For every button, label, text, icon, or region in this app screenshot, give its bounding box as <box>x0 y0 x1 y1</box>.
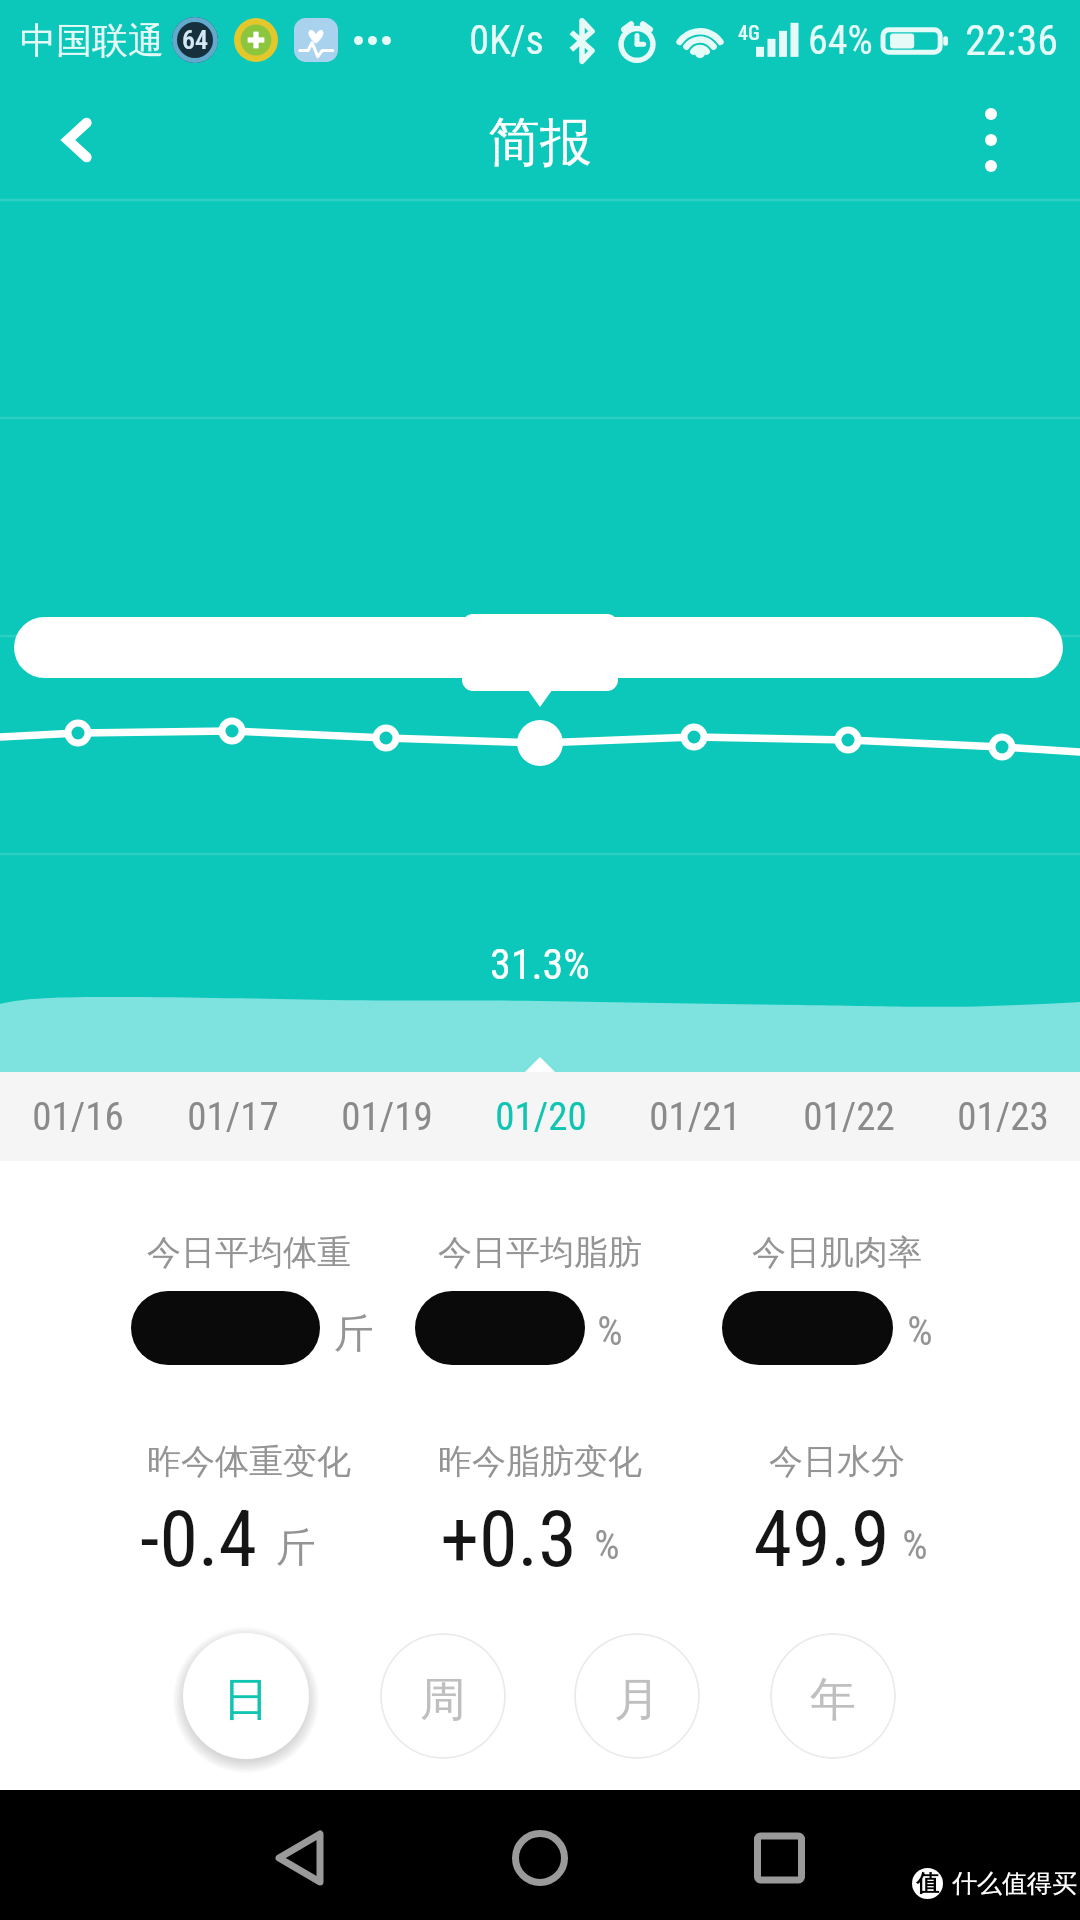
staticText: 斤 <box>334 1308 374 1358</box>
button[interactable]: 01/16 <box>0 1072 155 1161</box>
staticText: 周 <box>420 1671 466 1729</box>
staticText: 01/20 <box>495 1094 587 1140</box>
staticText: 昨今体重变化 <box>147 1440 351 1483</box>
button[interactable]: 年 <box>770 1633 896 1759</box>
staticText: 今日平均脂肪 <box>438 1231 642 1274</box>
staticText: 64 <box>182 25 208 55</box>
staticText: 今日肌肉率 <box>752 1231 922 1274</box>
staticText: % <box>597 1308 623 1355</box>
button[interactable]: More options <box>951 100 1031 180</box>
staticText: 01/19 <box>341 1094 433 1140</box>
button[interactable]: 日 <box>183 1633 309 1759</box>
button[interactable]: 01/21 <box>618 1072 772 1161</box>
button[interactable]: Back <box>38 100 118 180</box>
staticText: 斤 <box>276 1522 316 1572</box>
staticText: 64% <box>808 17 873 64</box>
staticText: +0.3 <box>440 1494 577 1585</box>
button[interactable]: 01/17 <box>155 1072 310 1161</box>
staticText: 01/23 <box>957 1094 1049 1140</box>
staticText: 日 <box>223 1671 269 1729</box>
staticText: 简报 <box>488 110 592 176</box>
staticText: 01/16 <box>32 1094 124 1140</box>
staticText: 年 <box>810 1671 856 1729</box>
button[interactable]: 01/19 <box>310 1072 464 1161</box>
staticText: 22:36 <box>965 16 1058 65</box>
staticText: 今日水分 <box>769 1440 905 1483</box>
button[interactable]: 01/20 <box>464 1072 618 1161</box>
staticText: 什么值得买 <box>952 1868 1077 1899</box>
staticText: 月 <box>614 1671 660 1729</box>
button[interactable]: 周 <box>380 1633 506 1759</box>
staticText: 今日平均体重 <box>147 1231 351 1274</box>
button[interactable]: 月 <box>574 1633 700 1759</box>
staticText: 01/22 <box>803 1094 895 1140</box>
button[interactable]: 01/22 <box>772 1072 926 1161</box>
staticText: 31.3% <box>490 940 590 989</box>
staticText: 中国联通 <box>20 18 164 63</box>
staticText: 4G <box>738 21 760 44</box>
staticText: % <box>594 1522 620 1569</box>
staticText: -0.4 <box>140 1494 257 1585</box>
staticText: 49.9 <box>753 1494 890 1585</box>
staticText: 昨今脂肪变化 <box>438 1440 642 1483</box>
staticText: 01/17 <box>187 1094 279 1140</box>
button[interactable]: 01/23 <box>926 1072 1080 1161</box>
staticText: 0K/s <box>469 17 544 64</box>
staticText: 值 <box>916 1869 939 1898</box>
staticText: 01/21 <box>649 1094 741 1140</box>
staticText: % <box>902 1522 928 1569</box>
staticText: % <box>907 1308 933 1355</box>
